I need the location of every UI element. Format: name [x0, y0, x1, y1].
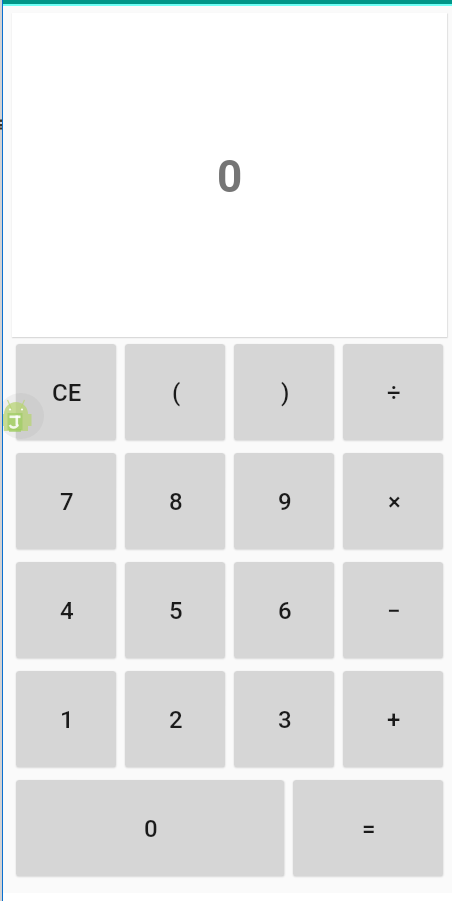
staticText: 2 — [169, 706, 183, 734]
button[interactable]: 8 — [125, 453, 225, 549]
staticText: ) — [281, 379, 290, 407]
button[interactable]: Multiply — [343, 453, 443, 549]
staticText: 8 — [169, 488, 183, 516]
staticText: 0 — [217, 151, 243, 203]
button[interactable]: Subtract — [343, 562, 443, 658]
button[interactable]: 3 — [234, 671, 334, 767]
staticText: 4 — [60, 597, 74, 625]
staticText: 9 — [278, 488, 292, 516]
staticText: − — [387, 597, 401, 625]
button[interactable]: Divide — [343, 344, 443, 440]
button[interactable]: Open parenthesis — [125, 344, 225, 440]
staticText: ( — [172, 379, 181, 407]
button[interactable]: 5 — [125, 562, 225, 658]
button[interactable]: 7 — [16, 453, 116, 549]
staticText: 1 — [60, 706, 74, 734]
button[interactable]: 1 — [16, 671, 116, 767]
staticText: 6 — [278, 597, 292, 625]
staticText: CE — [52, 379, 82, 407]
button[interactable]: 0 — [16, 780, 284, 876]
button[interactable]: 9 — [234, 453, 334, 549]
staticText: 0 — [144, 815, 158, 843]
button[interactable]: Clear entry — [16, 344, 116, 440]
button[interactable]: Add — [343, 671, 443, 767]
staticText: + — [387, 706, 401, 734]
staticText: = — [362, 815, 376, 843]
button[interactable]: 2 — [125, 671, 225, 767]
button[interactable]: 6 — [234, 562, 334, 658]
button[interactable]: 4 — [16, 562, 116, 658]
staticText: × — [388, 488, 401, 516]
staticText: 3 — [278, 706, 292, 734]
button[interactable]: Equals — [293, 780, 443, 876]
staticText: 7 — [60, 488, 74, 516]
button[interactable]: Close parenthesis — [234, 344, 334, 440]
staticText: 5 — [169, 597, 183, 625]
staticText: ÷ — [387, 379, 401, 407]
